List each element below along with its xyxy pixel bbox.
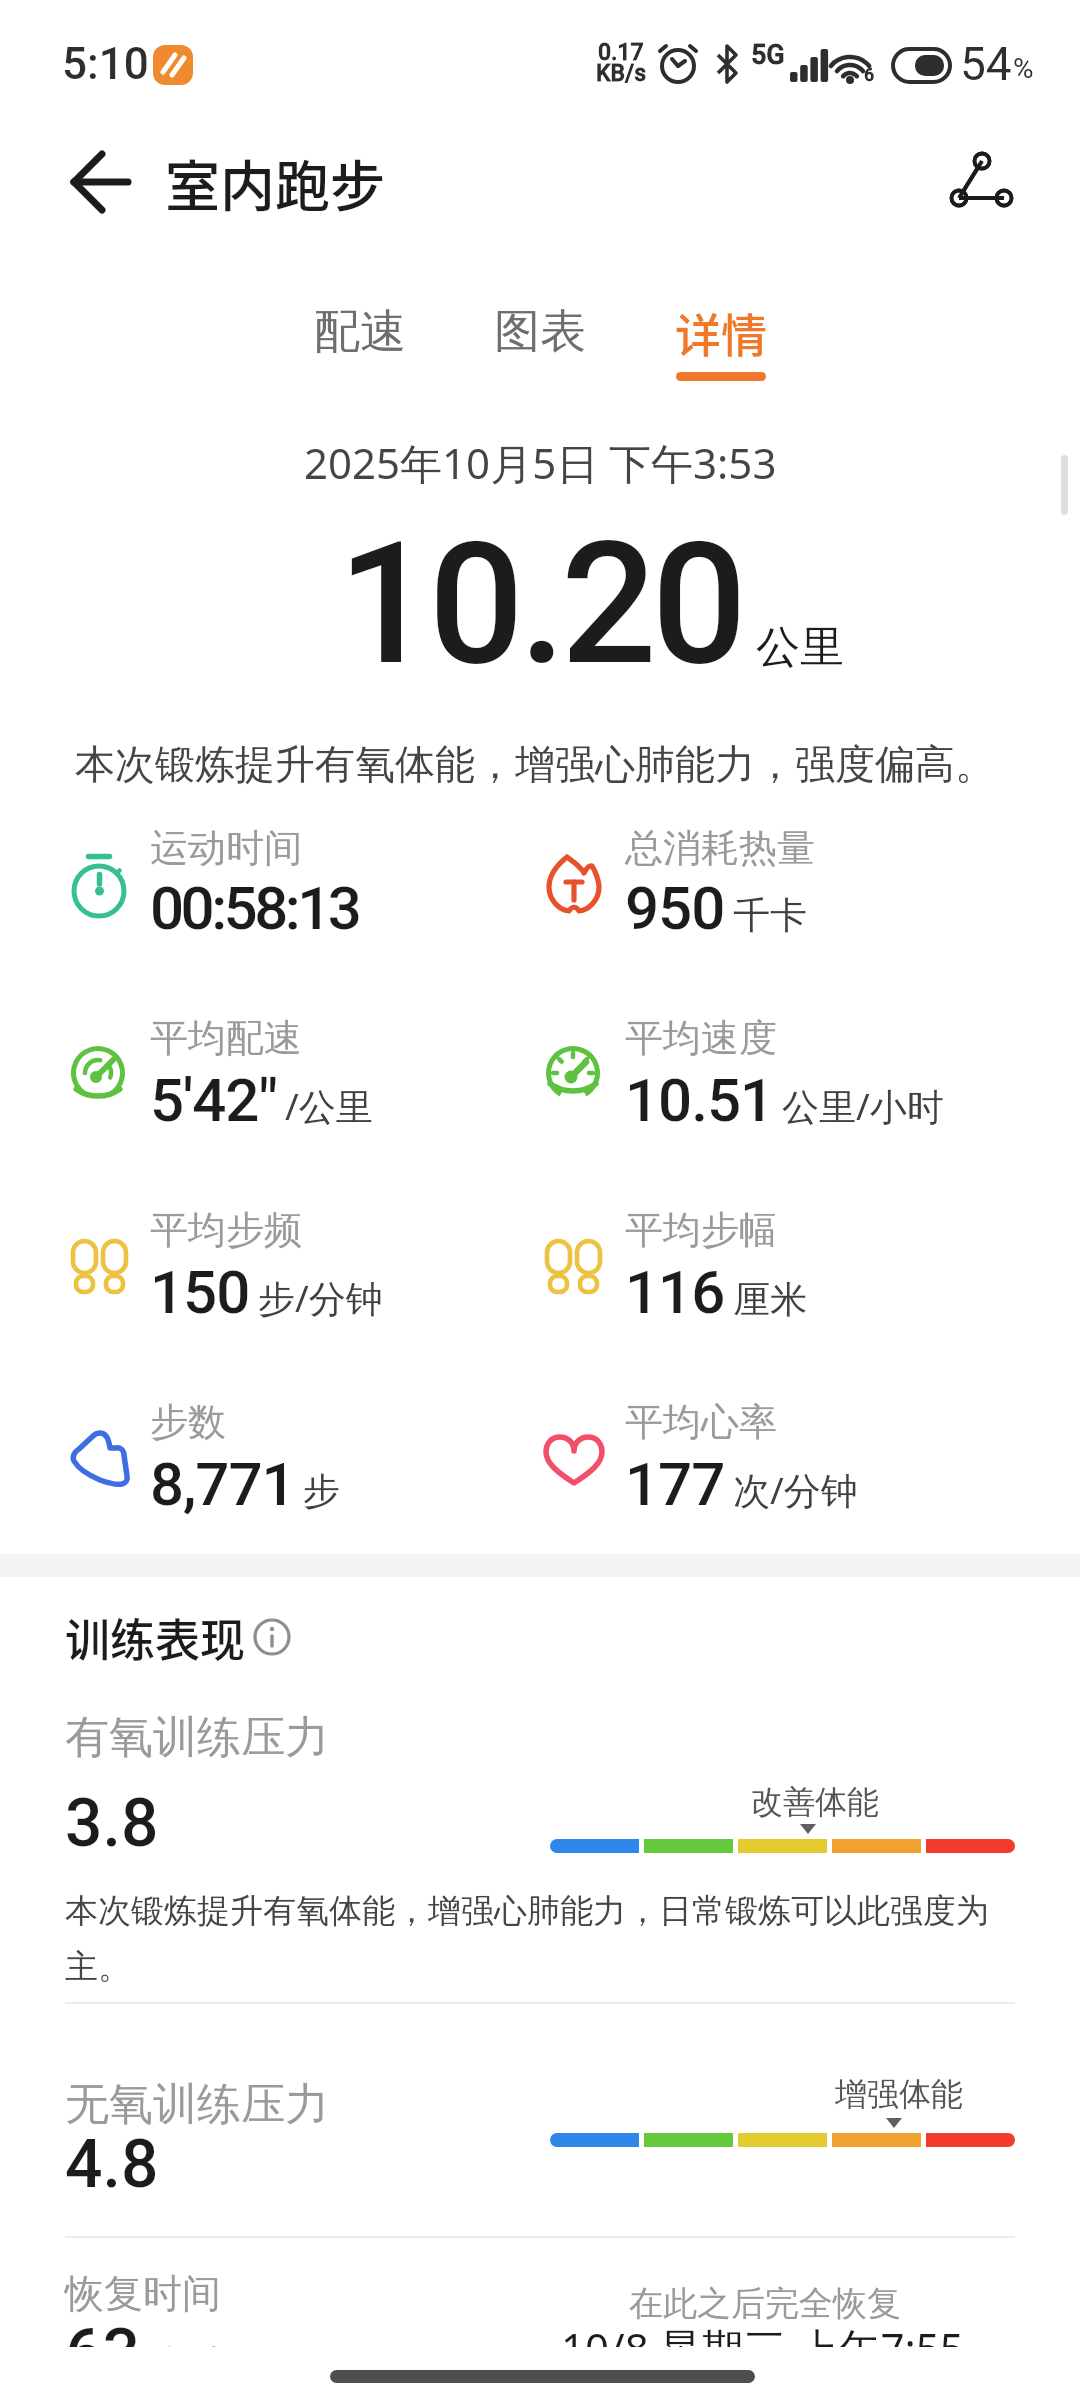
staticText: 3.8 — [65, 1785, 159, 1862]
staticText: 平均心率 — [625, 1398, 777, 1446]
staticText: 54 — [960, 37, 1012, 91]
staticText: 室内跑步 — [165, 142, 386, 222]
staticText: 在此之后完全恢复 — [629, 2282, 901, 2325]
staticText: 5:10 — [62, 38, 149, 90]
staticText: 116 — [625, 1257, 725, 1327]
staticText: 运动时间 — [150, 824, 302, 872]
staticText: 无氧训练压力 — [65, 2077, 329, 2132]
staticText: 平均步频 — [150, 1206, 302, 1254]
staticText: 公里/小时 — [782, 1080, 944, 1131]
staticText: 有氧训练压力 — [65, 1710, 329, 1765]
staticText: 5G — [751, 39, 785, 71]
staticText: 10.51 — [625, 1065, 774, 1135]
staticText: 次/分钟 — [733, 1464, 858, 1515]
staticText: 00:58:13 — [150, 873, 359, 943]
staticText: 图表 — [494, 303, 586, 361]
staticText: 10.20 — [338, 506, 742, 703]
staticText: 63 — [65, 2315, 141, 2347]
staticText: 8,771 — [150, 1449, 295, 1519]
button[interactable] — [930, 140, 1030, 230]
staticText: 小时 — [150, 2341, 222, 2347]
staticText: 详情 — [675, 299, 767, 366]
staticText: 950 — [625, 873, 725, 943]
button[interactable] — [250, 1610, 306, 1666]
staticText: 4.8 — [65, 2126, 159, 2203]
staticText: 10/8 星期三 上午7:55 — [561, 2319, 964, 2347]
button[interactable]: 详情 — [661, 290, 781, 374]
staticText: 2025年10月5日 下午3:53 — [304, 434, 777, 491]
staticText: 平均步幅 — [625, 1206, 777, 1254]
staticText: KB/s — [596, 60, 647, 87]
staticText: 步数 — [150, 1398, 226, 1446]
staticText: 0.17 — [598, 39, 644, 66]
staticText: /公里 — [285, 1080, 373, 1131]
staticText: 本次锻炼提升有氧体能，增强心肺能力，强度偏高。 — [75, 739, 995, 789]
staticText: 训练表现 — [65, 1605, 246, 1670]
button[interactable]: 配速 — [300, 290, 420, 374]
staticText: 千卡 — [733, 892, 807, 939]
staticText: 本次锻炼提升有氧体能，增强心肺能力，日常锻炼可以此强度为 — [65, 1890, 989, 1932]
button[interactable] — [52, 142, 142, 222]
staticText: % — [1013, 52, 1034, 82]
staticText: 步 — [303, 1468, 340, 1515]
staticText: 总消耗热量 — [625, 824, 815, 872]
staticText: 厘米 — [733, 1276, 807, 1323]
staticText: 主。 — [65, 1946, 131, 1988]
staticText: 增强体能 — [835, 2074, 963, 2114]
staticText: 6 — [864, 64, 875, 85]
staticText: 改善体能 — [751, 1782, 879, 1822]
staticText: 平均配速 — [150, 1014, 302, 1062]
staticText: 公里 — [756, 620, 844, 675]
staticText: 150 — [150, 1257, 250, 1327]
staticText: 步/分钟 — [258, 1272, 383, 1323]
staticText: 配速 — [314, 303, 406, 361]
staticText: 平均速度 — [625, 1014, 777, 1062]
staticText: 177 — [625, 1449, 725, 1519]
staticText: 5'42" — [150, 1065, 277, 1135]
staticText: 恢复时间 — [65, 2269, 221, 2318]
button[interactable]: 图表 — [480, 290, 600, 374]
